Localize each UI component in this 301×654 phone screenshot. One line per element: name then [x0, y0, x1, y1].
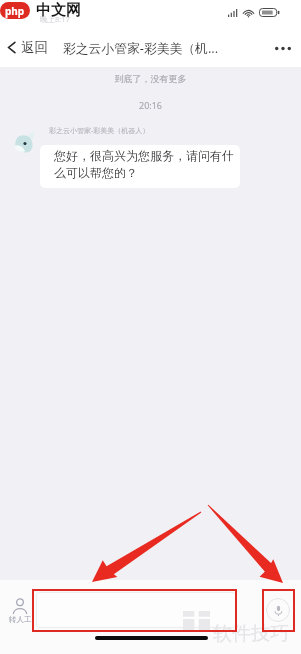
button[interactable]: [36, 592, 236, 628]
button[interactable]: 转人工: [4, 599, 36, 624]
staticText: 软件技巧: [213, 622, 289, 646]
staticText: 返回: [21, 39, 48, 56]
button[interactable]: 返回: [7, 39, 48, 56]
staticText: 中文网: [36, 1, 81, 20]
button[interactable]: Voice input: [266, 598, 290, 622]
staticText: 彩之云小管家-彩美美（机...: [63, 39, 219, 56]
staticText: 20:16: [0, 99, 301, 111]
staticText: 转人工: [9, 615, 32, 624]
staticText: 到底了，没有更多: [0, 73, 301, 84]
button[interactable]: More options: [271, 36, 295, 60]
staticText: php: [5, 4, 25, 18]
staticText: 晚上8:17: [40, 14, 70, 24]
staticText: 您好，很高兴为您服务，请问有什么可以帮您的？: [54, 148, 236, 181]
staticText: 彩之云小管家-彩美美（机器人）: [49, 126, 150, 136]
